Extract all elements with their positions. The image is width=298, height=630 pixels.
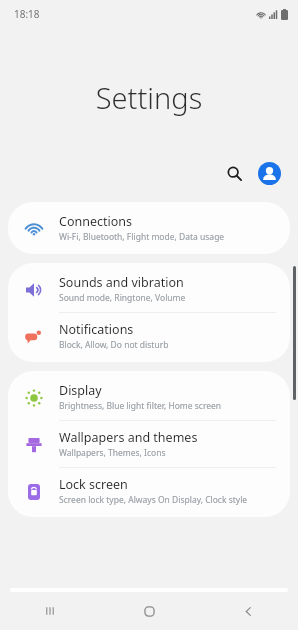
- button[interactable]: Lock screen: [8, 468, 290, 514]
- button[interactable]: Search: [217, 156, 251, 190]
- button[interactable]: Sounds and vibration: [8, 266, 290, 312]
- staticText: Block, Allow, Do not disturb: [59, 339, 169, 351]
- staticText: Connections: [59, 213, 132, 230]
- button[interactable]: Connections: [8, 205, 290, 251]
- button[interactable]: Account: [252, 156, 286, 190]
- button[interactable]: Home: [100, 592, 199, 630]
- staticText: Wi-Fi, Bluetooth, Flight mode, Data usag…: [59, 231, 225, 243]
- staticText: 18:18: [14, 7, 40, 21]
- staticText: Lock screen: [59, 476, 128, 493]
- staticText: Sound mode, Ringtone, Volume: [59, 292, 186, 304]
- staticText: Display: [59, 382, 102, 399]
- button[interactable]: Wallpapers and themes: [8, 421, 290, 467]
- button[interactable]: Display: [8, 374, 290, 420]
- button[interactable]: Notifications: [8, 313, 290, 359]
- staticText: Settings: [0, 78, 298, 117]
- staticText: Screen lock type, Always On Display, Clo…: [59, 494, 248, 506]
- staticText: Sounds and vibration: [59, 274, 184, 291]
- staticText: Notifications: [59, 321, 134, 338]
- staticText: Wallpapers, Themes, Icons: [59, 447, 166, 459]
- button[interactable]: Recents: [0, 592, 100, 630]
- button[interactable]: Back: [199, 592, 298, 630]
- staticText: Wallpapers and themes: [59, 429, 198, 446]
- staticText: Brightness, Blue light filter, Home scre…: [59, 400, 222, 412]
